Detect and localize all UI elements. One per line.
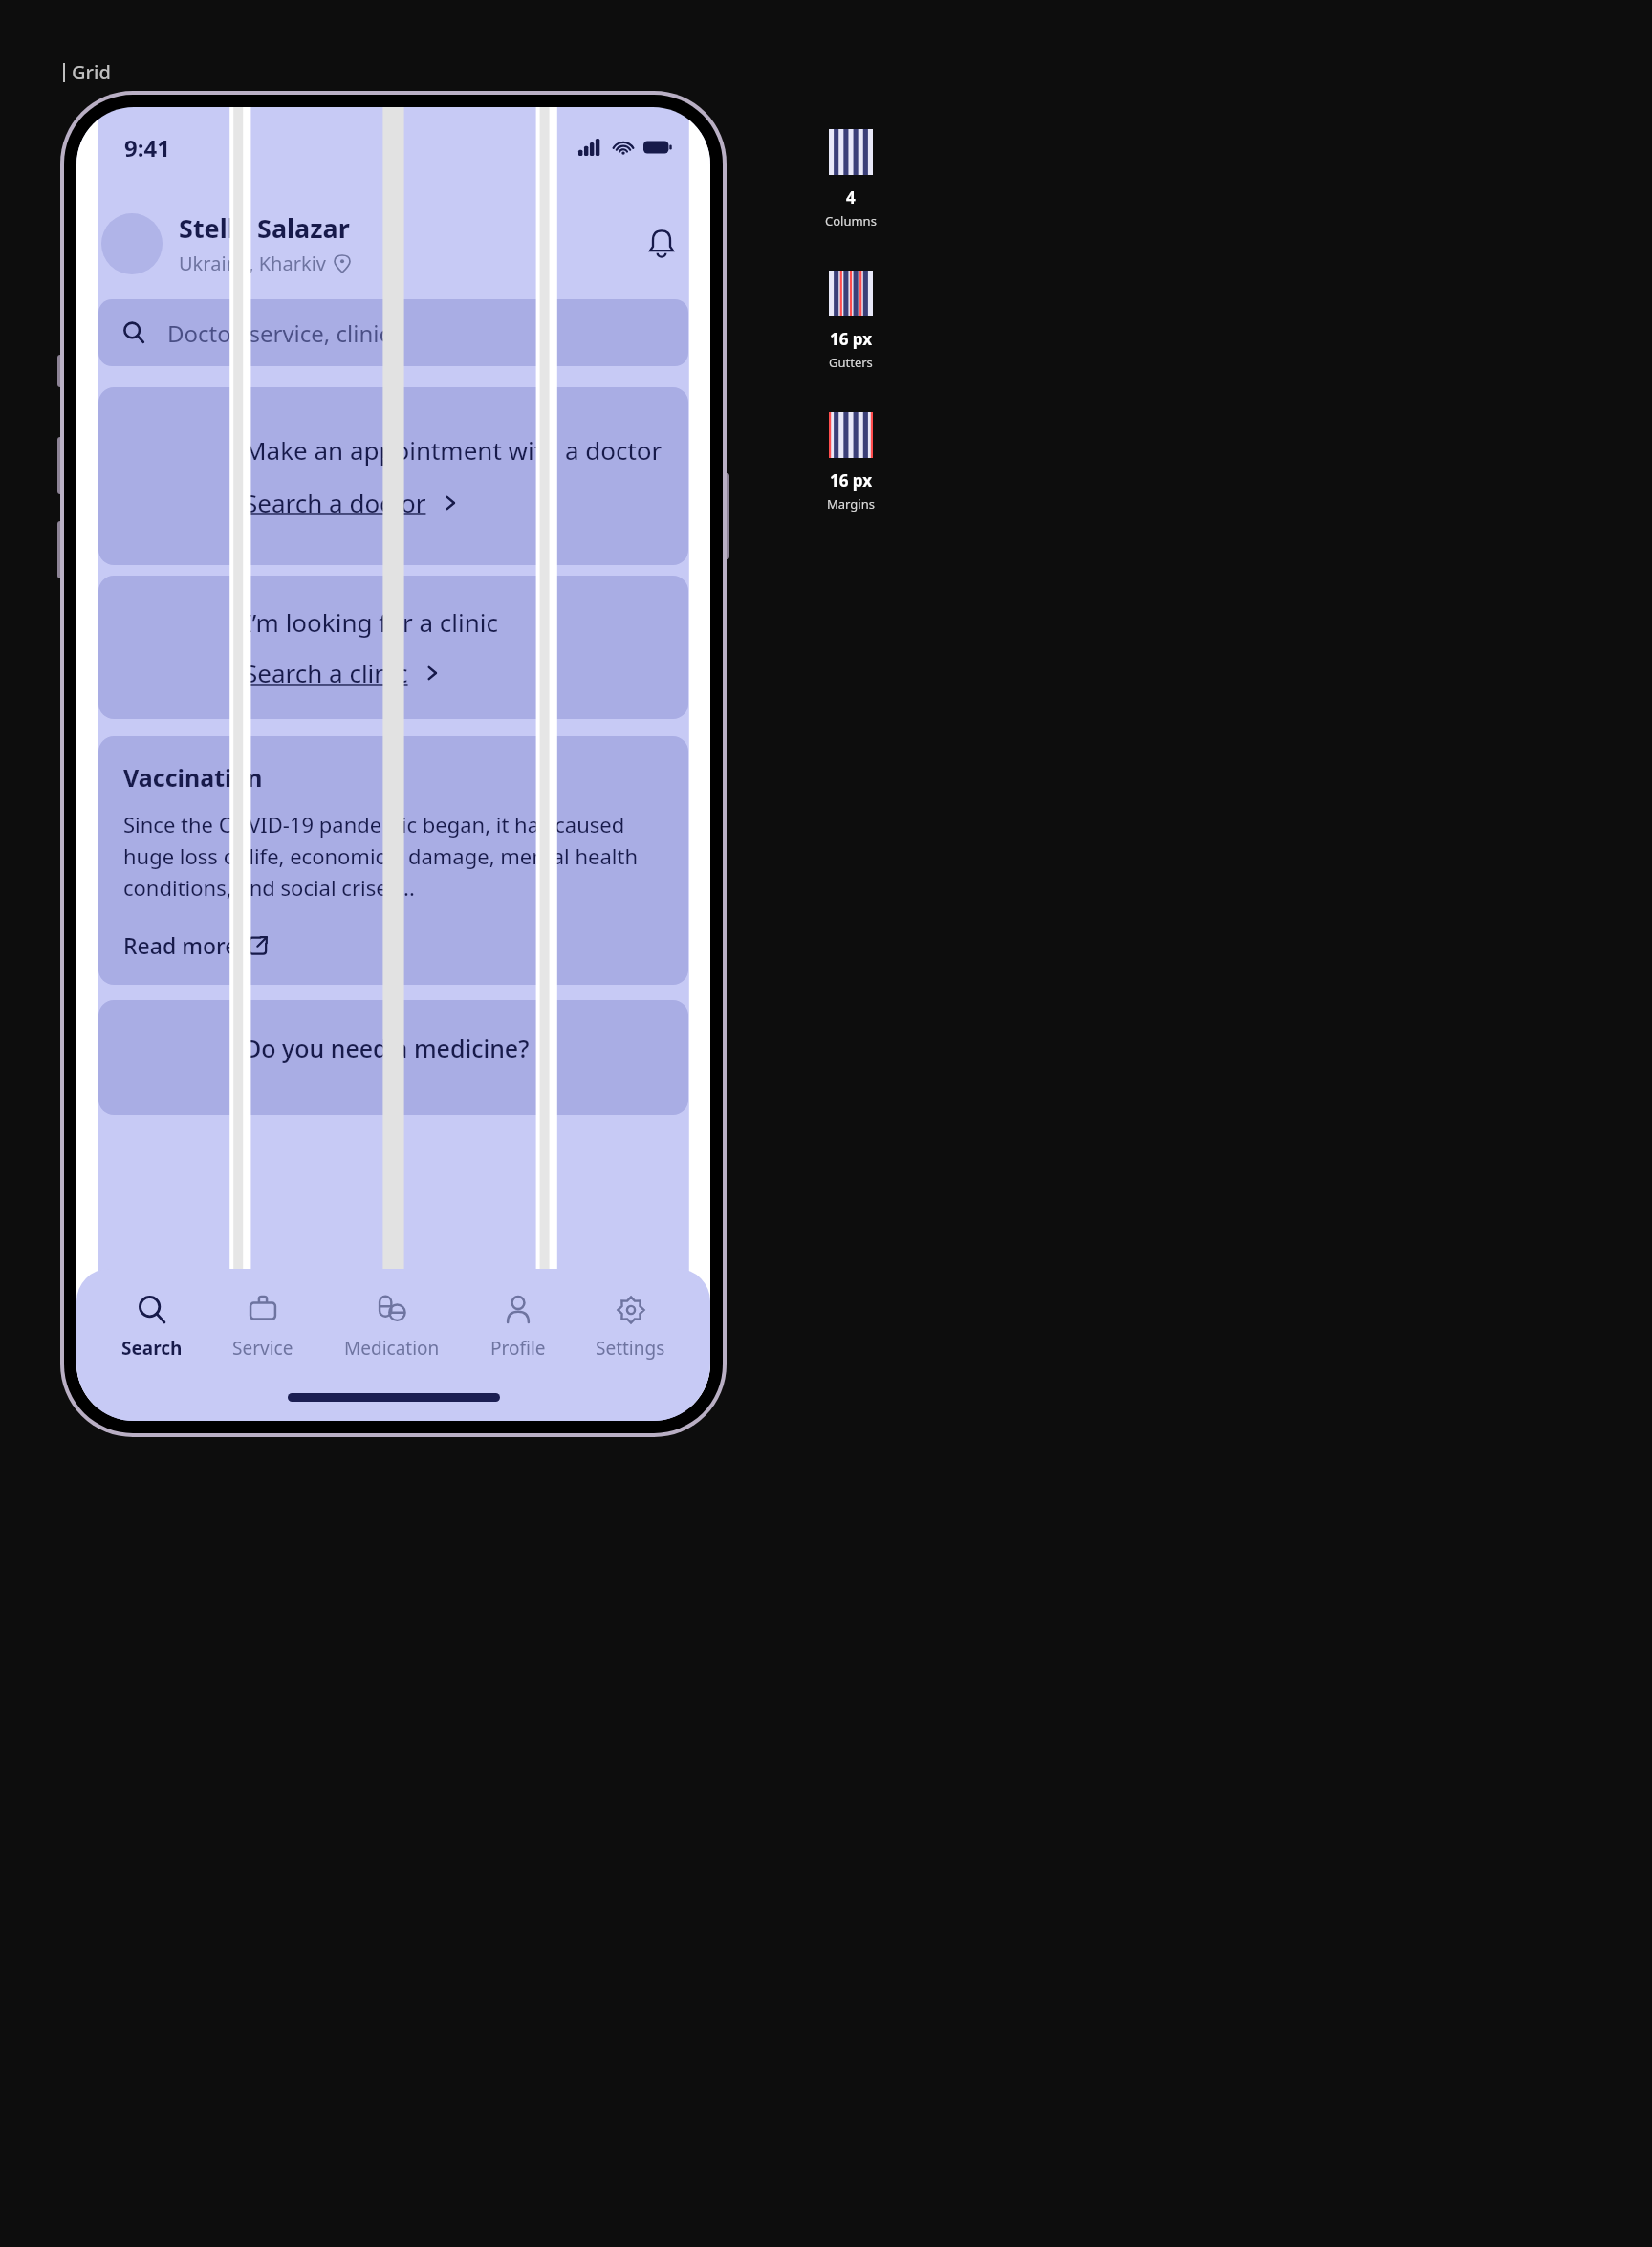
button[interactable]: Medication	[338, 1294, 446, 1361]
button[interactable]	[101, 213, 163, 274]
staticText: Gutters	[829, 354, 873, 371]
button[interactable]: I’m looking for a clinic	[98, 576, 688, 719]
staticText: Service	[232, 1336, 293, 1361]
staticText: Read more	[123, 930, 238, 960]
staticText: Doctor, service, clinic	[167, 317, 390, 349]
button[interactable]: Notifications	[638, 220, 685, 268]
button[interactable]: Doctor, service, clinic	[98, 299, 688, 366]
staticText: Profile	[490, 1336, 546, 1361]
button[interactable]: Settings	[590, 1294, 671, 1361]
staticText: Medication	[344, 1336, 440, 1361]
staticText: Search	[121, 1336, 183, 1361]
button[interactable]: Make an appointment with a doctor	[98, 387, 688, 565]
staticText: Ukraine, Kharkiv	[179, 251, 326, 276]
staticText: 16 px	[830, 328, 873, 350]
staticText: Make an appointment with a doctor	[244, 433, 663, 467]
staticText: Search a clinic	[244, 656, 408, 689]
staticText: 4	[846, 186, 856, 208]
button[interactable]: Service	[227, 1294, 299, 1361]
staticText: 9:41	[124, 132, 170, 164]
staticText: Margins	[827, 495, 875, 513]
button[interactable]: Vaccination	[98, 736, 688, 985]
button[interactable]: Profile	[485, 1294, 552, 1361]
button[interactable]: Read more	[123, 930, 269, 960]
staticText: 16 px	[830, 469, 873, 491]
staticText: Vaccination	[123, 761, 263, 794]
staticText: I’m looking for a clinic	[244, 605, 498, 639]
staticText: Do you need a medicine?	[244, 1032, 530, 1064]
button[interactable]: Search	[116, 1294, 188, 1361]
button[interactable]: Do you need a medicine?	[98, 1000, 688, 1115]
staticText: Columns	[825, 212, 877, 229]
staticText: Settings	[596, 1336, 665, 1361]
staticText: Search a doctor	[244, 486, 426, 519]
staticText: Grid	[72, 59, 111, 85]
staticText: Stella Salazar	[179, 210, 350, 246]
staticText: Since the COVID-19 pandemic began, it ha…	[123, 810, 669, 902]
